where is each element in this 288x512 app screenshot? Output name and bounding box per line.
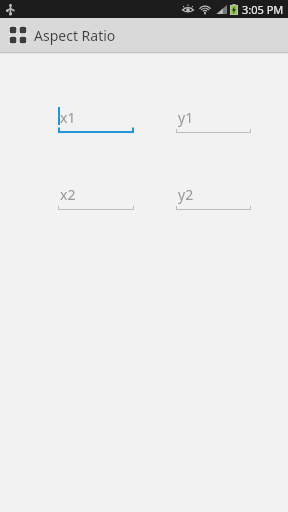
button[interactable]: x1 input field (58, 106, 134, 135)
staticText: x2 (60, 185, 76, 204)
staticText: Aspect Ratio (34, 26, 116, 45)
other: App icon (9, 26, 27, 44)
button[interactable]: y2 input field (176, 183, 251, 212)
button[interactable]: x2 input field (58, 183, 134, 212)
staticText: y2 (178, 185, 194, 204)
staticText: y1 (178, 108, 194, 127)
staticText: x1 (60, 108, 76, 127)
button[interactable]: App icon (0, 18, 288, 52)
button[interactable]: y1 input field (176, 106, 251, 135)
staticText: 3:05 PM (242, 2, 284, 17)
